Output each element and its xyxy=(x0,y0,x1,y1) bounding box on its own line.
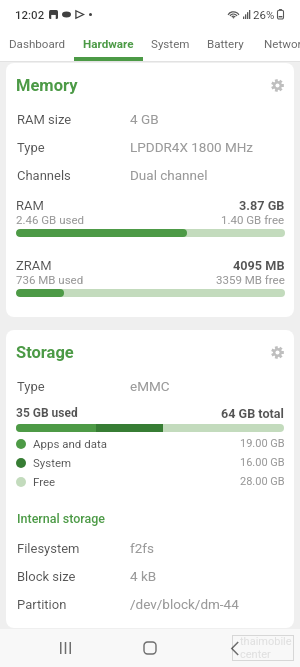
button[interactable]: Type xyxy=(6,133,294,161)
staticText: Block size xyxy=(17,569,76,584)
button[interactable]: Free xyxy=(6,472,294,491)
staticText: Memory xyxy=(16,76,78,94)
staticText: 2.46 GB used xyxy=(16,213,84,226)
staticText: LPDDR4X 1800 MHz xyxy=(130,139,254,155)
staticText: Network xyxy=(264,37,300,51)
button[interactable]: Back xyxy=(215,629,255,667)
staticText: center xyxy=(240,648,271,661)
staticText: 19.00 GB xyxy=(240,437,285,450)
staticText: System xyxy=(151,37,190,51)
button[interactable]: Battery xyxy=(198,28,252,62)
staticText: f2fs xyxy=(130,540,154,556)
staticText: Dashboard xyxy=(9,37,66,51)
staticText: /dev/block/dm-44 xyxy=(130,596,239,612)
button[interactable]: Filesystem xyxy=(6,534,294,562)
staticText: Type xyxy=(17,140,45,155)
staticText: Apps and data xyxy=(33,437,107,450)
button[interactable]: Hardware xyxy=(74,28,143,62)
staticText: 16.00 GB xyxy=(240,456,285,469)
staticText: Type xyxy=(17,379,45,394)
button[interactable]: Recent apps xyxy=(45,629,85,667)
staticText: 1.40 GB free xyxy=(221,213,285,226)
button[interactable]: Channels xyxy=(6,161,294,189)
staticText: 4095 MB xyxy=(233,258,285,273)
button[interactable]: Storage settings xyxy=(266,343,288,361)
button[interactable]: Memory settings xyxy=(266,76,288,94)
staticText: 35 GB used xyxy=(16,406,78,420)
button[interactable]: System xyxy=(143,28,198,62)
staticText: 4 GB xyxy=(130,111,159,127)
staticText: RAM size xyxy=(17,112,72,127)
staticText: 736 MB used xyxy=(16,273,84,286)
staticText: eMMC xyxy=(130,378,170,394)
button[interactable]: Home xyxy=(130,629,170,667)
staticText: RAM xyxy=(16,198,44,213)
staticText: 28.00 GB xyxy=(240,475,285,488)
button[interactable]: RAM size xyxy=(6,105,294,133)
button[interactable]: Network xyxy=(256,28,300,62)
button[interactable]: Apps and data xyxy=(6,434,294,453)
staticText: ZRAM xyxy=(16,258,52,273)
staticText: 64 GB total xyxy=(221,406,284,421)
staticText: Storage xyxy=(16,343,74,361)
staticText: Free xyxy=(33,475,56,488)
staticText: Channels xyxy=(17,168,71,183)
staticText: Filesystem xyxy=(17,541,80,556)
staticText: 3.87 GB xyxy=(239,198,285,213)
button[interactable]: Dashboard xyxy=(0,28,74,62)
staticText: 12:02 xyxy=(15,8,45,21)
staticText: System xyxy=(33,456,72,469)
staticText: thaimobile xyxy=(240,635,292,648)
staticText: Hardware xyxy=(83,37,134,51)
button[interactable]: System xyxy=(6,453,294,472)
staticText: 3359 MB free xyxy=(216,273,285,286)
staticText: Partition xyxy=(17,597,67,612)
staticText: 26% xyxy=(253,8,275,21)
button[interactable]: Type xyxy=(6,372,294,400)
staticText: Battery xyxy=(207,37,244,51)
staticText: Dual channel xyxy=(130,167,208,183)
staticText: Internal storage xyxy=(17,511,106,526)
button[interactable]: Partition xyxy=(6,590,294,618)
button[interactable]: Block size xyxy=(6,562,294,590)
staticText: 4 kB xyxy=(130,568,157,584)
